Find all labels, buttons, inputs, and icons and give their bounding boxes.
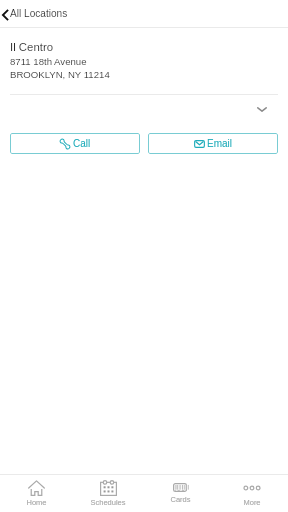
button[interactable]: More (216, 475, 288, 512)
staticText: All Locations (10, 8, 68, 19)
staticText: More (243, 498, 261, 506)
staticText: BROOKLYN, NY 11214 (10, 69, 110, 80)
staticText: 8711 18th Avenue (10, 56, 87, 67)
button[interactable]: Expand details (0, 95, 288, 133)
staticText: Cards (170, 495, 191, 503)
button[interactable]: Call (10, 133, 140, 154)
staticText: Il Centro (10, 41, 54, 54)
staticText: Home (26, 498, 47, 506)
staticText: Call (73, 138, 91, 149)
staticText: Schedules (90, 498, 126, 506)
button[interactable]: Email (148, 133, 278, 154)
button[interactable]: Schedules (72, 475, 144, 512)
button[interactable]: Cards (144, 475, 216, 512)
button[interactable]: Home (0, 475, 72, 512)
button[interactable]: All Locations (0, 0, 76, 27)
staticText: Email (207, 138, 233, 149)
